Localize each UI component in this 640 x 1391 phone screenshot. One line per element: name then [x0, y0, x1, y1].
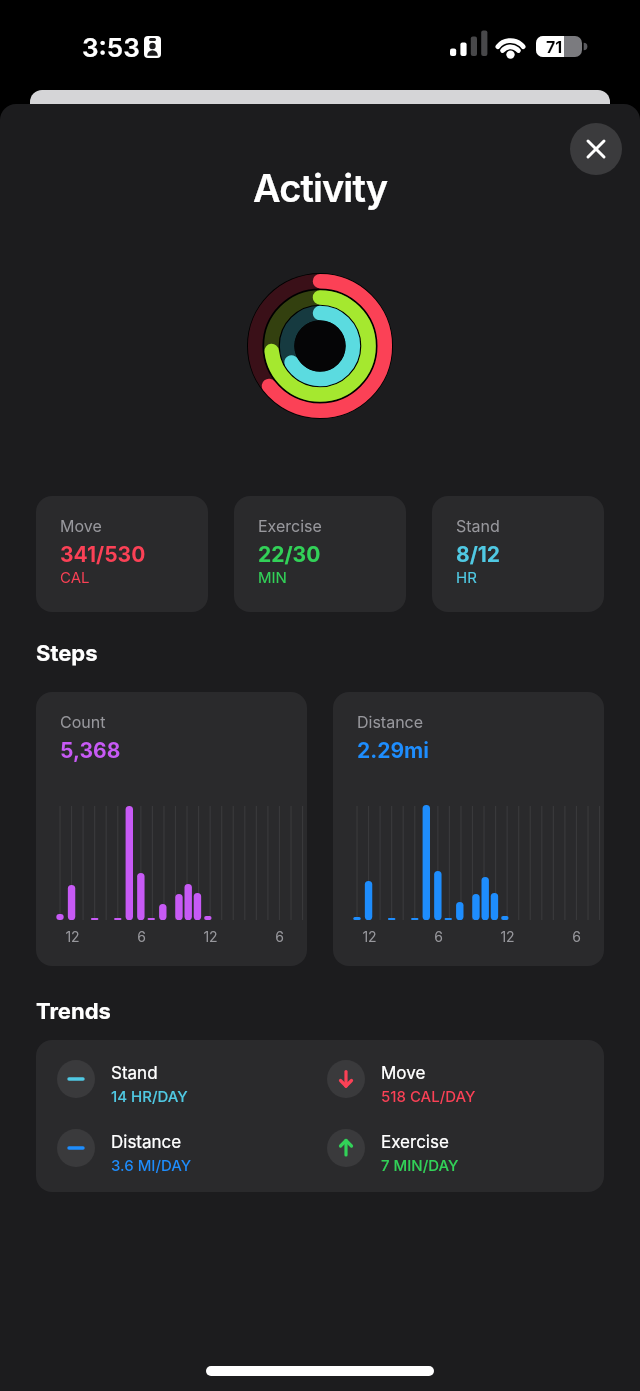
- staticText: Move: [381, 1063, 426, 1084]
- staticText: 6: [275, 928, 284, 945]
- button[interactable]: Exercise: [234, 496, 406, 612]
- staticText: Stand: [456, 516, 500, 535]
- button[interactable]: Exercise: [327, 1129, 577, 1177]
- staticText: 8/12: [456, 542, 501, 567]
- staticText: 5,368: [60, 738, 121, 763]
- staticText: 2.29mi: [357, 738, 429, 763]
- staticText: Move: [60, 516, 102, 535]
- staticText: Distance: [357, 712, 424, 731]
- staticText: 341/530: [60, 542, 146, 567]
- staticText: 12: [500, 928, 515, 945]
- staticText: 518 CAL/DAY: [381, 1087, 476, 1105]
- staticText: 12: [203, 928, 218, 945]
- staticText: 6: [137, 928, 146, 945]
- staticText: 22/30: [258, 542, 321, 567]
- staticText: 6: [572, 928, 581, 945]
- staticText: Trends: [36, 998, 111, 1025]
- button[interactable]: Move: [36, 496, 208, 612]
- button[interactable]: Stand: [432, 496, 604, 612]
- staticText: Steps: [36, 640, 98, 667]
- staticText: CAL: [60, 568, 90, 586]
- button[interactable]: Distance: [333, 692, 604, 966]
- staticText: Activity: [253, 165, 388, 211]
- staticText: Stand: [111, 1063, 158, 1084]
- button[interactable]: Move: [327, 1060, 577, 1108]
- staticText: 6: [434, 928, 443, 945]
- staticText: 14 HR/DAY: [111, 1087, 188, 1105]
- staticText: 12: [65, 928, 80, 945]
- staticText: 3.6 MI/DAY: [111, 1156, 192, 1174]
- staticText: HR: [456, 568, 477, 586]
- staticText: 7 MIN/DAY: [381, 1156, 459, 1174]
- staticText: Count: [60, 712, 106, 731]
- staticText: Distance: [111, 1132, 182, 1153]
- staticText: 12: [362, 928, 377, 945]
- staticText: Exercise: [258, 516, 322, 535]
- staticText: Exercise: [381, 1132, 449, 1153]
- staticText: 3:53: [82, 32, 140, 63]
- button[interactable]: Distance: [57, 1129, 307, 1177]
- button[interactable]: Stand: [57, 1060, 307, 1108]
- button[interactable]: [570, 123, 622, 175]
- staticText: MIN: [258, 568, 287, 586]
- button[interactable]: Count: [36, 692, 307, 966]
- staticText: 71: [546, 37, 563, 56]
